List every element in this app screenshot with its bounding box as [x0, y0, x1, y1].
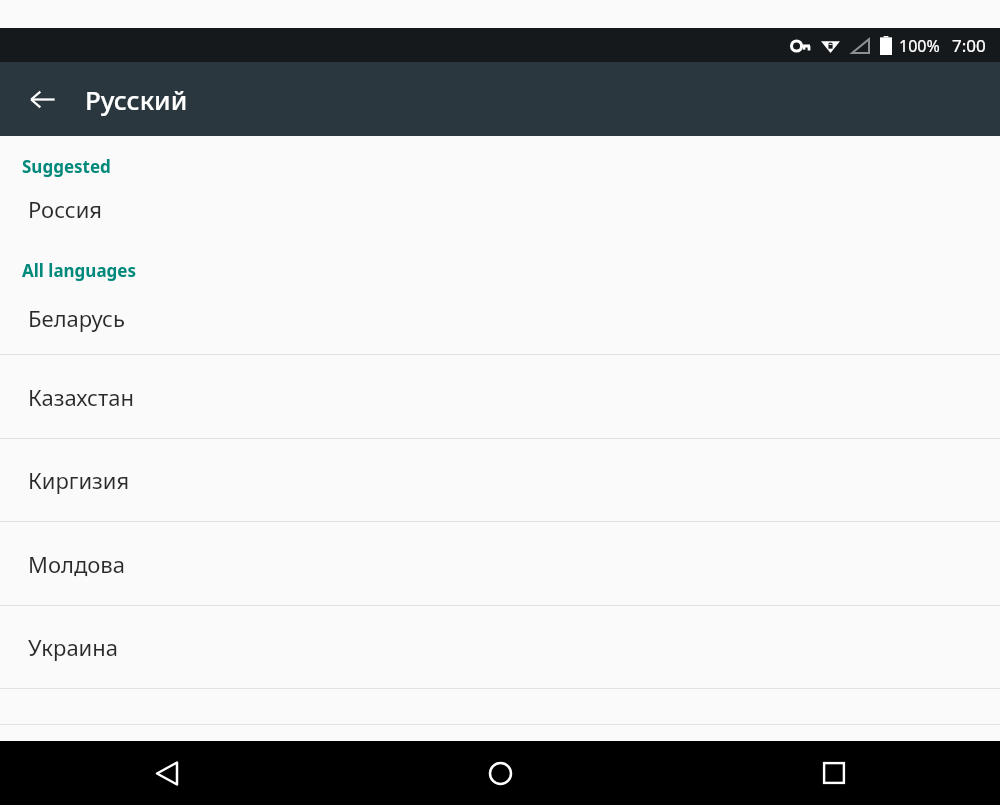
- button[interactable]: Россия: [0, 178, 1000, 240]
- staticText: Россия: [28, 194, 102, 224]
- button[interactable]: Молдова: [0, 522, 1000, 605]
- staticText: Киргизия: [28, 465, 130, 495]
- staticText: 100%: [899, 35, 940, 57]
- button[interactable]: Казахстан: [0, 355, 1000, 438]
- button[interactable]: Украина: [0, 606, 1000, 688]
- staticText: Молдова: [28, 549, 125, 579]
- button[interactable]: Back: [0, 741, 334, 805]
- button[interactable]: Back: [16, 73, 68, 125]
- button[interactable]: Recents: [667, 741, 1000, 805]
- staticText: Suggested: [22, 155, 111, 178]
- button[interactable]: Home: [334, 741, 667, 805]
- staticText: Украина: [28, 632, 119, 662]
- button[interactable]: Беларусь: [0, 282, 1000, 354]
- staticText: Русский: [85, 82, 188, 117]
- staticText: All languages: [22, 259, 137, 282]
- staticText: 7:00: [952, 34, 986, 57]
- button[interactable]: Киргизия: [0, 439, 1000, 521]
- staticText: Казахстан: [28, 382, 134, 412]
- staticText: Беларусь: [28, 303, 125, 333]
